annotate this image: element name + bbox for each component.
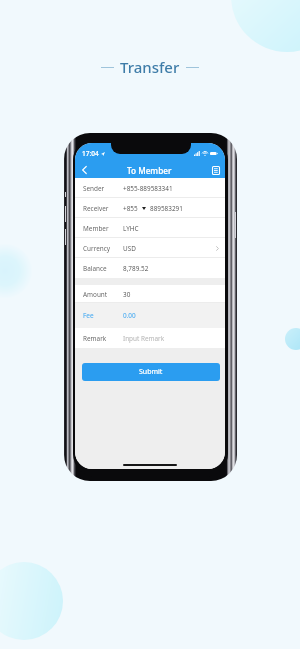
staticText: 889583291 xyxy=(150,204,183,213)
button[interactable]: Member xyxy=(75,218,225,238)
staticText: Remark xyxy=(83,334,123,343)
staticText: Receiver xyxy=(83,204,123,213)
staticText: Input Remark xyxy=(123,334,165,343)
button[interactable]: Back xyxy=(75,162,94,178)
staticText: Sender xyxy=(83,184,123,193)
staticText: 8,789.52 xyxy=(123,264,149,273)
button[interactable]: Balance xyxy=(75,258,225,278)
button[interactable]: Remark xyxy=(75,328,225,348)
staticText: Amount xyxy=(83,290,123,299)
staticText: USD xyxy=(123,244,136,253)
staticText: +855-889583341 xyxy=(123,184,173,193)
button[interactable]: Submit xyxy=(82,363,220,381)
staticText: Currency xyxy=(83,244,123,253)
staticText: 17:04 xyxy=(82,149,99,158)
staticText: LYHC xyxy=(123,224,139,233)
button[interactable]: Fee xyxy=(75,303,225,328)
staticText: Transfer xyxy=(120,57,180,77)
staticText: Member xyxy=(83,224,123,233)
staticText: Fee xyxy=(83,311,123,320)
button[interactable]: Amount xyxy=(75,285,225,303)
button[interactable]: Currency xyxy=(75,238,225,258)
staticText: 30 xyxy=(123,290,131,299)
staticText: Balance xyxy=(83,264,123,273)
staticText: 0.00 xyxy=(123,311,136,320)
staticText: Submit xyxy=(139,367,163,377)
staticText: To Member xyxy=(127,165,172,176)
staticText: +855 xyxy=(123,204,138,213)
button[interactable]: Receiver xyxy=(75,198,225,218)
button[interactable]: Transaction records xyxy=(206,162,225,178)
button[interactable]: Sender xyxy=(75,178,225,198)
